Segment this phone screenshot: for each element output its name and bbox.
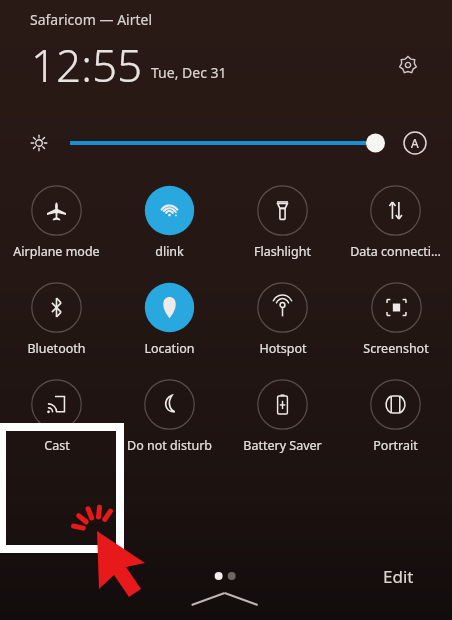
staticText: 12:55: [31, 35, 143, 95]
staticText: Do not disturb: [127, 437, 212, 454]
staticText: Airplane mode: [13, 243, 100, 260]
staticText: Safaricom — Airtel: [30, 10, 153, 29]
button[interactable]: Bluetooth: [27, 282, 86, 357]
button[interactable]: dlink: [144, 185, 195, 260]
button[interactable]: Airplane mode: [13, 185, 100, 260]
staticText: Flashlight: [254, 243, 311, 260]
staticText: A: [411, 135, 419, 151]
button[interactable]: Flashlight: [254, 185, 311, 260]
button[interactable]: Brightness: [70, 126, 386, 160]
button[interactable]: Portrait: [370, 379, 421, 454]
staticText: Bluetooth: [27, 340, 86, 357]
button[interactable]: Cast: [31, 379, 82, 454]
button[interactable]: Battery Saver: [243, 379, 322, 454]
staticText: Battery Saver: [243, 437, 322, 454]
staticText: Location: [144, 340, 195, 357]
button[interactable]: Data connecti…: [350, 185, 441, 260]
staticText: dlink: [155, 243, 184, 260]
staticText: Hotspot: [259, 340, 307, 357]
staticText: Edit: [383, 565, 414, 588]
button[interactable]: Hotspot: [257, 282, 308, 357]
button[interactable]: Do not disturb: [127, 379, 212, 454]
button[interactable]: Settings: [388, 45, 428, 85]
staticText: Cast: [44, 437, 70, 454]
button[interactable]: Auto brightness: [400, 128, 430, 158]
staticText: Tue, Dec 31: [151, 63, 227, 82]
staticText: Portrait: [373, 437, 418, 454]
staticText: Screenshot: [363, 340, 429, 357]
button[interactable]: Screenshot: [363, 282, 429, 357]
button[interactable]: Location: [144, 282, 195, 357]
staticText: Data connecti…: [350, 243, 441, 260]
button[interactable]: Edit: [375, 560, 422, 593]
